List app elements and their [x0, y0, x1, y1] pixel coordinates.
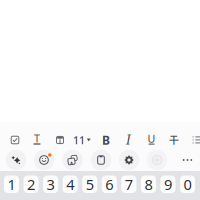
staticText: 7 — [125, 174, 133, 194]
staticText: 8 — [144, 174, 152, 194]
button[interactable]: Text style — [27, 130, 47, 150]
staticText: 11 — [73, 133, 85, 147]
staticText: 5 — [86, 174, 94, 194]
staticText: T — [34, 131, 40, 145]
button[interactable]: 6 — [102, 175, 117, 193]
button[interactable]: Strikethrough — [164, 130, 184, 150]
button[interactable]: Documents — [90, 149, 112, 171]
button[interactable]: Font size — [70, 130, 94, 150]
button[interactable]: 4 — [63, 175, 78, 193]
button[interactable]: More options — [176, 149, 198, 171]
staticText: U — [147, 131, 155, 146]
button[interactable]: 9 — [160, 175, 175, 193]
staticText: 9 — [164, 174, 172, 194]
button[interactable]: Bold — [96, 130, 116, 150]
staticText: 6 — [105, 174, 113, 194]
staticText: 0 — [183, 174, 191, 194]
staticText: B — [102, 132, 110, 148]
button[interactable]: Checklist — [5, 130, 25, 150]
button[interactable]: Photos — [61, 149, 83, 171]
staticText: 1 — [7, 174, 15, 194]
button[interactable]: 2 — [24, 175, 39, 193]
staticText: 3 — [47, 174, 55, 194]
button[interactable]: Bulleted list — [187, 130, 200, 150]
button[interactable]: 5 — [82, 175, 97, 193]
button[interactable]: Settings — [118, 149, 140, 171]
button[interactable]: Underline — [141, 130, 161, 150]
button[interactable]: Italic — [118, 130, 138, 150]
staticText: T — [170, 132, 177, 148]
staticText: 4 — [66, 174, 74, 194]
staticText: 2 — [27, 174, 35, 194]
button[interactable]: 0 — [180, 175, 195, 193]
button[interactable]: 8 — [141, 175, 156, 193]
button[interactable]: 1 — [4, 175, 19, 193]
button[interactable]: Emoji — [33, 149, 55, 171]
button[interactable]: Writing tools — [5, 149, 27, 171]
staticText: I — [126, 133, 131, 147]
button[interactable]: More apps — [146, 149, 168, 171]
button[interactable]: 7 — [121, 175, 136, 193]
button[interactable]: 3 — [43, 175, 58, 193]
button[interactable]: Table — [50, 130, 70, 150]
